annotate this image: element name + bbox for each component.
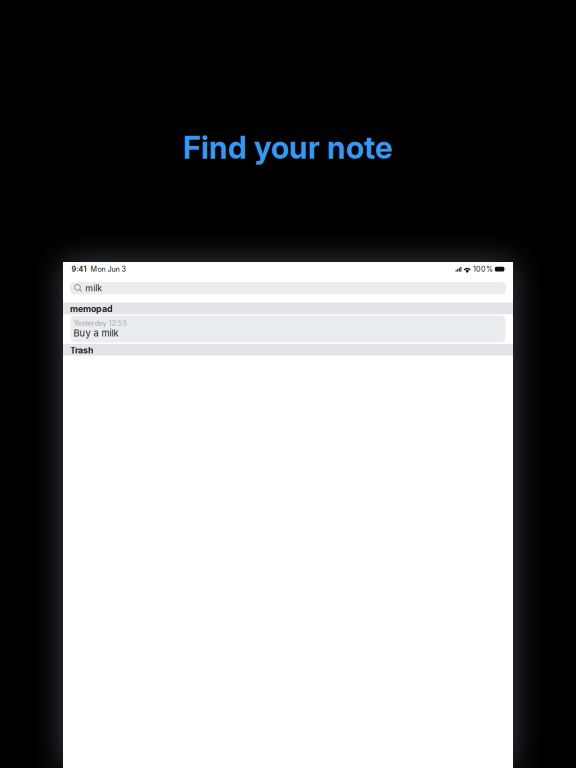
staticText: Mon Jun 3 (91, 265, 126, 273)
button[interactable]: memopad (63, 302, 513, 314)
staticText: milk (85, 283, 102, 293)
staticText: 9:41 (71, 265, 86, 273)
staticText: Yesterday 12:55 (73, 319, 127, 327)
staticText: Buy a milk (73, 327, 118, 339)
staticText: 100% (473, 265, 493, 273)
staticText: Trash (70, 345, 93, 356)
staticText: memopad (70, 304, 113, 314)
button[interactable]: milk (70, 282, 506, 294)
button[interactable]: Trash (63, 344, 513, 356)
staticText: Find your note (183, 129, 393, 166)
button[interactable]: Yesterday 12:55 (70, 316, 505, 342)
